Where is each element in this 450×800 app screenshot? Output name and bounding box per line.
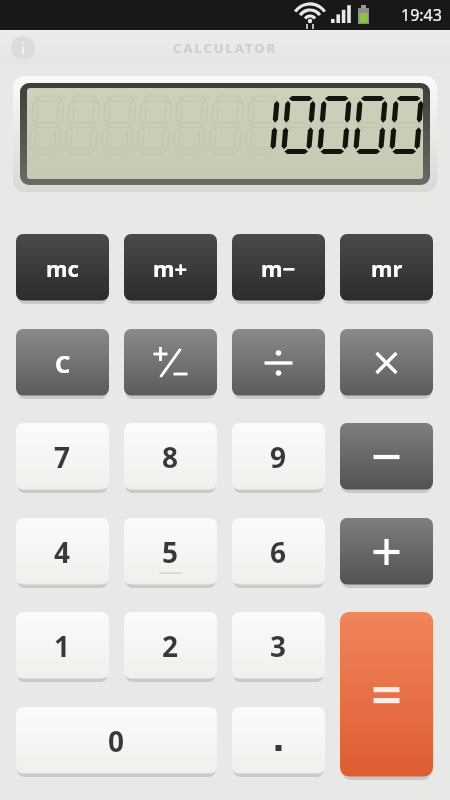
button[interactable]: Plus bbox=[340, 518, 433, 586]
button[interactable]: About bbox=[10, 35, 36, 61]
button[interactable]: Equals bbox=[340, 612, 433, 778]
button[interactable]: 7 bbox=[16, 423, 109, 491]
button[interactable]: 8 bbox=[124, 423, 217, 491]
button[interactable]: m+ bbox=[124, 234, 217, 302]
staticText: 5 bbox=[162, 533, 179, 571]
button[interactable]: 3 bbox=[232, 612, 325, 680]
button[interactable]: 5 bbox=[124, 518, 217, 586]
button[interactable]: C bbox=[16, 329, 109, 397]
button[interactable]: 9 bbox=[232, 423, 325, 491]
staticText: 7 bbox=[54, 438, 71, 476]
button[interactable]: m− bbox=[232, 234, 325, 302]
staticText: 1 bbox=[54, 627, 71, 665]
staticText: 4 bbox=[54, 533, 71, 571]
staticText: mc bbox=[46, 253, 79, 283]
button[interactable]: 4 bbox=[16, 518, 109, 586]
button[interactable]: Divide bbox=[232, 329, 325, 397]
staticText: 2 bbox=[162, 627, 179, 665]
staticText: C bbox=[55, 347, 71, 380]
button[interactable]: 1 bbox=[16, 612, 109, 680]
staticText: m− bbox=[261, 253, 296, 283]
staticText: 9 bbox=[270, 438, 287, 476]
button[interactable]: mr bbox=[340, 234, 433, 302]
button[interactable]: Multiply bbox=[340, 329, 433, 397]
button[interactable]: 6 bbox=[232, 518, 325, 586]
button[interactable]: Decimal point bbox=[232, 707, 325, 775]
staticText: mr bbox=[371, 253, 403, 283]
staticText: CALCULATOR bbox=[173, 39, 277, 57]
button[interactable]: Minus bbox=[340, 423, 433, 491]
button[interactable]: Plus minus bbox=[124, 329, 217, 397]
staticText: 6 bbox=[270, 533, 287, 571]
staticText: 3 bbox=[270, 627, 287, 665]
staticText: 19:43 bbox=[401, 4, 442, 26]
button[interactable]: mc bbox=[16, 234, 109, 302]
button[interactable]: 2 bbox=[124, 612, 217, 680]
staticText: 8 bbox=[162, 438, 179, 476]
button[interactable]: 0 bbox=[16, 707, 217, 775]
staticText: 0 bbox=[108, 722, 125, 760]
staticText: m+ bbox=[153, 253, 188, 283]
